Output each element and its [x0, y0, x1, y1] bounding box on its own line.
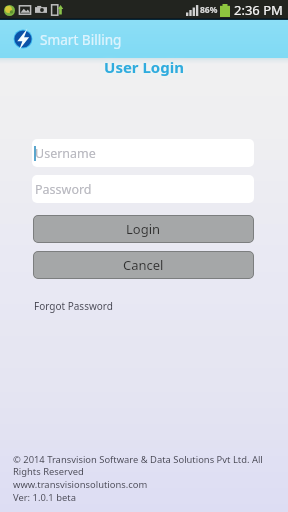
other: Smart Billing logo — [12, 28, 34, 50]
staticText: 2:36 PM — [234, 1, 283, 19]
button[interactable]: Cancel — [33, 251, 254, 279]
staticText: 86% — [200, 4, 218, 16]
staticText: Password — [35, 181, 92, 198]
staticText: Cancel — [123, 256, 164, 274]
staticText: Smart Billing — [40, 30, 122, 49]
button[interactable]: Username — [32, 139, 254, 167]
staticText: www.transvisionsolutions.com — [13, 478, 148, 491]
button[interactable]: Login — [33, 215, 254, 243]
button[interactable]: Password — [32, 175, 254, 203]
staticText: © 2014 Transvision Software & Data Solut… — [13, 453, 263, 478]
staticText: Ver: 1.0.1 beta — [13, 491, 76, 504]
staticText: User Login — [0, 57, 288, 77]
staticText: Username — [35, 145, 96, 162]
staticText: Login — [126, 220, 161, 238]
button[interactable]: Forgot Password — [31, 297, 116, 315]
staticText: Forgot Password — [34, 299, 113, 313]
